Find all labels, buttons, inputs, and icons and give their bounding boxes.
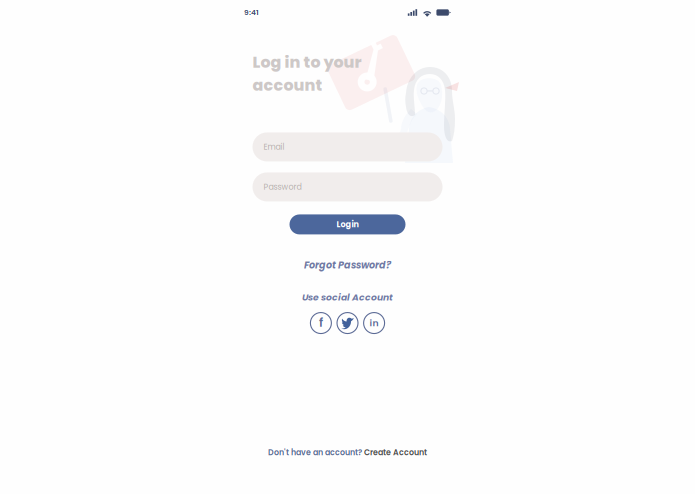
staticText: Don't have an account? bbox=[268, 447, 364, 458]
button[interactable]: Facebook bbox=[308, 310, 334, 336]
staticText: account bbox=[252, 74, 322, 96]
staticText: f bbox=[319, 314, 323, 331]
button[interactable]: LinkedIn bbox=[361, 310, 387, 336]
staticText: Email bbox=[263, 141, 284, 152]
button[interactable]: Don't have an account? bbox=[268, 447, 427, 458]
staticText: Create Account bbox=[364, 447, 427, 458]
staticText: Use social Account bbox=[302, 291, 393, 304]
button[interactable]: Email bbox=[252, 132, 442, 161]
staticText: 9:41 bbox=[244, 7, 259, 18]
button[interactable]: Login bbox=[289, 214, 405, 234]
staticText: Forgot Password? bbox=[304, 258, 391, 272]
button[interactable]: Twitter bbox=[334, 310, 361, 336]
staticText: Login bbox=[336, 219, 358, 230]
staticText: Password bbox=[263, 181, 301, 192]
staticText: in bbox=[370, 316, 379, 330]
staticText: Log in to your bbox=[252, 51, 361, 73]
button[interactable]: Forgot Password? bbox=[300, 254, 395, 276]
button[interactable]: Password bbox=[252, 172, 442, 201]
